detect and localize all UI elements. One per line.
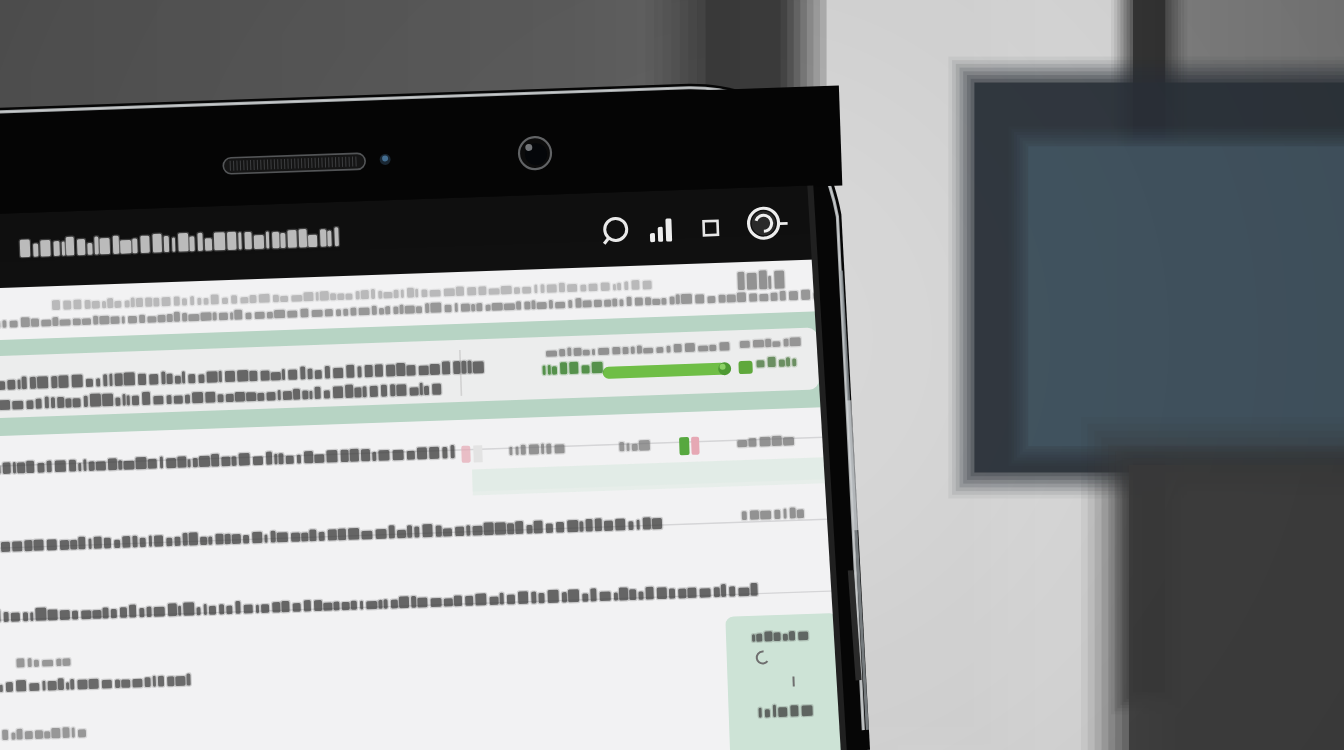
button[interactable]: Signal strength <box>650 228 692 274</box>
button[interactable]: List item four <box>0 674 818 750</box>
button[interactable]: List header <box>0 288 818 340</box>
button[interactable]: Account <box>746 228 798 274</box>
button[interactable]: List item two <box>0 518 818 596</box>
button[interactable]: List item three <box>0 596 818 674</box>
button[interactable]: Search <box>602 228 642 274</box>
button[interactable]: Progress row <box>0 340 818 436</box>
other: Phone displaying a list screen <box>0 0 1344 750</box>
button[interactable]: List item one <box>0 440 818 518</box>
button[interactable]: Battery <box>700 228 736 274</box>
